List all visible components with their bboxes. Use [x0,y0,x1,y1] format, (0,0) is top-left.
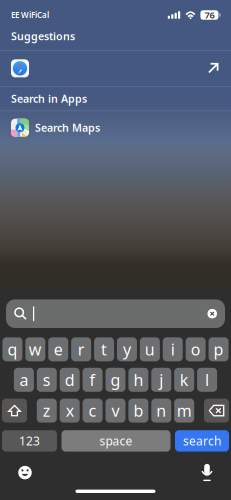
staticText: j [159,369,163,390]
staticText: v [111,400,119,421]
button[interactable]: d [60,368,80,392]
button[interactable]: p [209,337,229,361]
button[interactable]: 123 [2,430,57,452]
button[interactable]: r [71,337,91,361]
button[interactable]: Dictate [196,462,218,484]
staticText: 76 [204,9,214,21]
staticText: q [7,339,17,360]
staticText: search [183,433,221,449]
button[interactable]: n [151,399,171,423]
staticText: f [90,369,96,390]
button[interactable]: e [48,337,68,361]
staticText: Search in Apps [11,91,87,106]
staticText: o [191,339,201,360]
staticText: p [214,339,224,360]
button[interactable]: space [61,430,170,452]
button[interactable]: m [174,399,194,423]
button[interactable]: s [37,368,57,392]
button[interactable]: j [151,368,171,392]
staticText: d [65,369,75,390]
staticText: g [110,369,120,390]
staticText: space [99,433,132,449]
staticText: z [43,400,51,421]
button[interactable]: y [117,337,137,361]
staticText: t [101,339,107,360]
button[interactable]: o [186,337,206,361]
staticText: n [156,400,166,421]
button[interactable]: Clear text [207,309,217,318]
button[interactable]: i [163,337,183,361]
staticText: c [89,400,97,421]
button[interactable]: Emoji keyboard [14,462,36,484]
staticText: e [54,339,63,360]
button[interactable]: Delete [204,399,229,423]
button[interactable]: search [175,430,229,452]
button[interactable]: t [94,337,114,361]
button[interactable]: q [2,337,22,361]
staticText: Suggestions [11,29,75,43]
staticText: EE WiFiCal [11,10,49,20]
button[interactable]: h [128,368,148,392]
button[interactable]: c [83,399,103,423]
staticText: y [123,339,131,360]
staticText: m [177,400,192,421]
staticText: r [78,339,85,360]
button[interactable]: z [37,399,57,423]
staticText: x [66,400,74,421]
button[interactable]: g [105,368,125,392]
button[interactable]: u [140,337,160,361]
button[interactable]: f [83,368,103,392]
staticText: k [180,369,189,390]
staticText: s [43,369,51,390]
button[interactable]: l [197,368,217,392]
staticText: Search Maps [35,121,100,135]
button[interactable]: k [174,368,194,392]
staticText: w [29,339,42,360]
staticText: u [145,339,155,360]
button[interactable]: Search Maps [0,111,231,144]
staticText: a [19,369,28,390]
button[interactable]: w [25,337,45,361]
button[interactable]: b [128,399,148,423]
button[interactable]: a [14,368,34,392]
button[interactable]: Shift [2,399,27,423]
staticText: i [171,339,175,360]
staticText: h [133,369,143,390]
button[interactable]: v [105,399,125,423]
staticText: l [205,369,209,390]
staticText: 123 [19,433,40,449]
staticText: b [133,400,143,421]
button[interactable] [0,51,231,86]
button[interactable]: x [60,399,80,423]
